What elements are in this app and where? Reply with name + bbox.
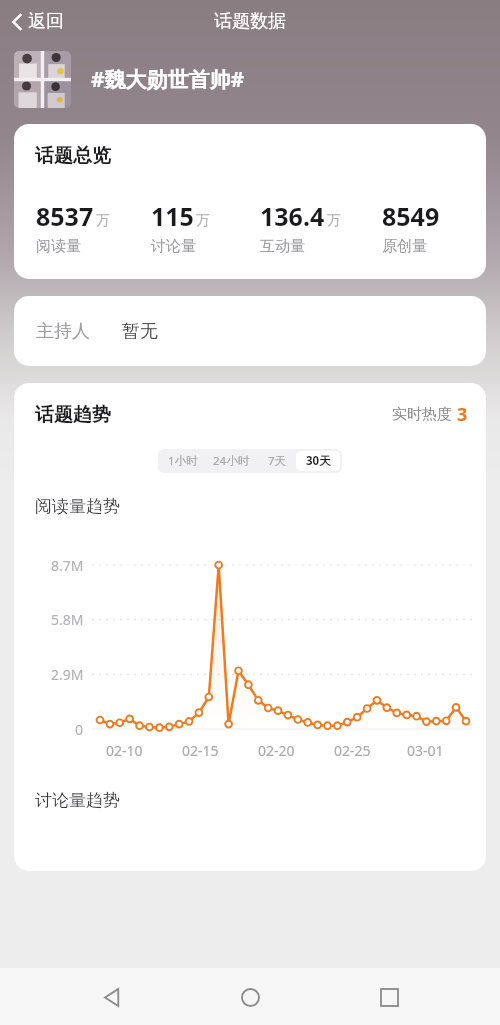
staticText: 02-10 [106, 741, 143, 760]
button[interactable]: 24小时 [205, 451, 258, 471]
staticText: 8549 [382, 199, 440, 233]
staticText: 实时热度 [392, 405, 452, 424]
button[interactable]: Back [85, 970, 139, 1024]
staticText: 暂无 [122, 320, 158, 343]
button[interactable]: 30天 [296, 451, 340, 471]
staticText: 2.9M [51, 665, 84, 684]
button[interactable]: #魏大勋世首帅# [0, 42, 500, 116]
staticText: 讨论量趋势 [35, 790, 120, 811]
staticText: 互动量 [260, 237, 305, 256]
staticText: 30天 [306, 453, 331, 469]
staticText: 原创量 [382, 237, 427, 256]
staticText: 3 [457, 402, 468, 427]
staticText: 7天 [268, 453, 287, 469]
staticText: 02-20 [258, 741, 295, 760]
staticText: 136.4 [260, 199, 325, 233]
button[interactable]: 主持人 [14, 296, 486, 366]
staticText: 8.7M [51, 556, 84, 575]
button[interactable]: 1小时 [160, 451, 205, 471]
staticText: 万 [196, 212, 210, 230]
staticText: #魏大勋世首帅# [91, 65, 245, 94]
button[interactable]: 实时热度 [392, 402, 468, 427]
staticText: 主持人 [36, 320, 90, 343]
staticText: 阅读量趋势 [35, 496, 120, 517]
staticText: 话题总览 [35, 144, 111, 168]
staticText: 话题数据 [214, 10, 286, 33]
staticText: 0 [75, 720, 84, 739]
staticText: 阅读量 [36, 237, 81, 256]
staticText: 5.8M [51, 610, 84, 629]
button[interactable]: Recents [362, 970, 416, 1024]
staticText: 8537 [36, 199, 94, 233]
staticText: 02-25 [334, 741, 371, 760]
staticText: 返回 [28, 10, 64, 33]
staticText: 讨论量 [151, 237, 196, 256]
staticText: 115 [151, 199, 194, 233]
button[interactable]: Home [223, 970, 277, 1024]
button[interactable]: 7天 [258, 451, 296, 471]
staticText: 03-01 [407, 741, 444, 760]
staticText: 万 [96, 212, 110, 230]
staticText: 万 [327, 212, 341, 230]
button[interactable]: 话题总览 [14, 124, 486, 279]
button[interactable]: 返回 [0, 4, 76, 39]
staticText: 话题趋势 [35, 403, 111, 427]
staticText: 24小时 [213, 453, 250, 469]
staticText: 02-15 [182, 741, 219, 760]
staticText: 1小时 [168, 453, 198, 469]
